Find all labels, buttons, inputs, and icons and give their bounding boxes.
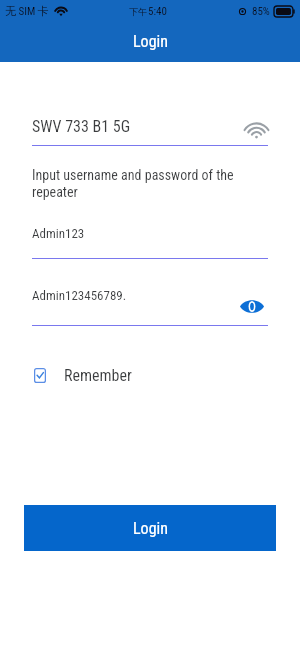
button[interactable]: Remember xyxy=(34,366,132,385)
button[interactable]: Login xyxy=(24,505,276,551)
staticText: Admin123456789. xyxy=(32,288,127,303)
staticText: Login xyxy=(133,519,168,538)
staticText: SWV 733 B1 5G xyxy=(32,117,131,136)
staticText: Login xyxy=(133,32,168,51)
staticText: 下午 xyxy=(129,6,147,17)
staticText: Input username and password of the repea… xyxy=(32,167,260,201)
staticText: 5:40 xyxy=(148,5,167,18)
button[interactable]: Show password xyxy=(236,292,268,321)
staticText: 85% xyxy=(252,5,270,18)
staticText: Remember xyxy=(64,366,132,385)
staticText: Admin123 xyxy=(32,226,85,241)
staticText: 无 SIM 卡 xyxy=(5,4,49,18)
